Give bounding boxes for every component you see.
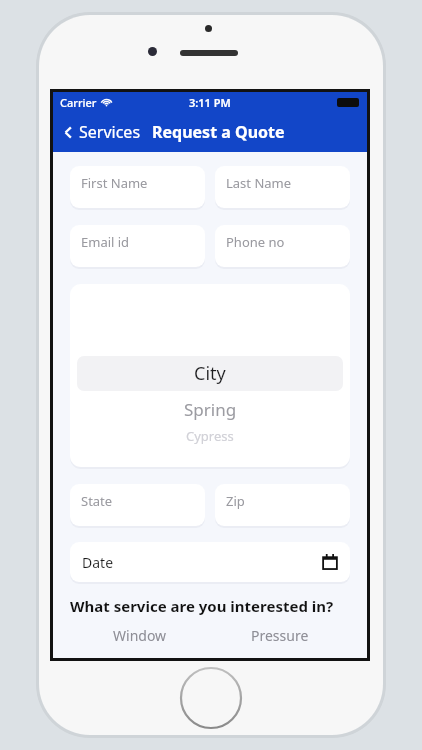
button[interactable]: Email id	[70, 225, 205, 267]
staticText: State	[81, 492, 113, 510]
staticText: Phone no	[226, 233, 285, 251]
staticText: First Name	[81, 174, 148, 192]
button[interactable]: First Name	[70, 166, 205, 208]
staticText: Cypress	[186, 427, 234, 445]
staticText: Email id	[81, 233, 130, 251]
staticText: 3:11 PM	[189, 95, 231, 110]
button[interactable]: City	[70, 284, 350, 467]
staticText: Zip	[226, 492, 245, 510]
other: Pick date	[322, 554, 338, 570]
button[interactable]: Phone no	[215, 225, 350, 267]
button[interactable]: Zip	[215, 484, 350, 526]
button[interactable]: State	[70, 484, 205, 526]
button[interactable]: Home	[181, 668, 241, 728]
staticText: Request a Quote	[152, 121, 285, 143]
staticText: Services	[79, 121, 141, 143]
staticText: Window	[113, 626, 167, 645]
staticText: Date	[82, 553, 114, 572]
staticText: Carrier	[60, 95, 97, 110]
staticText: Spring	[184, 398, 237, 421]
staticText: Last Name	[226, 174, 292, 192]
staticText: City	[194, 361, 226, 386]
button[interactable]: Services	[53, 117, 147, 147]
button[interactable]: Date	[70, 542, 350, 582]
button[interactable]: Window	[70, 626, 210, 645]
staticText: What service are you interested in?	[70, 596, 334, 616]
button[interactable]: Pressure	[210, 626, 350, 645]
button[interactable]: Last Name	[215, 166, 350, 208]
staticText: Pressure	[251, 626, 309, 645]
